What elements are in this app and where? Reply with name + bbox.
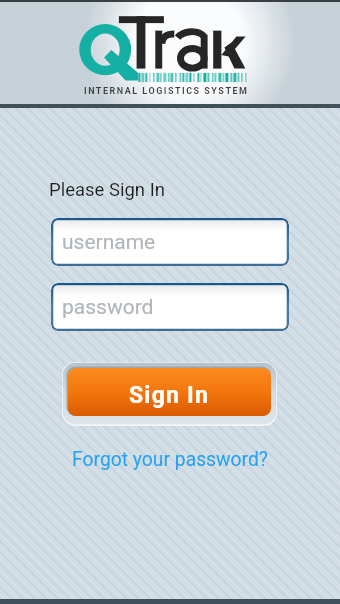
- button[interactable]: password: [51, 283, 289, 331]
- staticText: INTERNAL LOGISTICS SYSTEM: [84, 86, 249, 97]
- staticText: username: [62, 230, 156, 255]
- button[interactable]: Forgot your password?: [0, 448, 340, 471]
- staticText: Sign In: [129, 382, 210, 409]
- button[interactable]: username: [51, 218, 289, 266]
- staticText: password: [62, 295, 154, 320]
- staticText: Please Sign In: [49, 179, 165, 201]
- button[interactable]: Sign In: [62, 362, 277, 426]
